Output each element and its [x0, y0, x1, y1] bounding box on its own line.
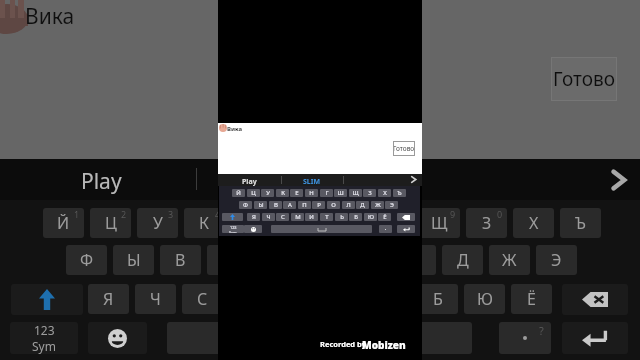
button[interactable]: В — [269, 201, 282, 209]
button[interactable]: Й — [43, 208, 84, 238]
button[interactable]: Ь — [335, 213, 348, 221]
button[interactable]: Ш — [372, 208, 413, 238]
button[interactable]: М — [291, 213, 304, 221]
button[interactable]: Ф — [239, 201, 252, 209]
button[interactable]: Ё — [511, 284, 552, 314]
button[interactable]: У — [137, 208, 178, 238]
button[interactable]: Готово — [551, 57, 617, 101]
button[interactable]: Е — [290, 189, 303, 197]
button[interactable]: Щ — [349, 189, 362, 197]
staticText: Ц — [105, 212, 117, 234]
staticText: Щ — [352, 189, 359, 197]
button[interactable]: Ч — [262, 213, 275, 221]
button[interactable]: Е — [231, 208, 272, 238]
button[interactable]: Emoji — [88, 322, 147, 354]
staticText: Sym — [32, 338, 56, 354]
button[interactable]: Space — [271, 225, 372, 233]
button[interactable]: Я — [247, 213, 260, 221]
button[interactable]: Ц — [90, 208, 131, 238]
button[interactable]: Ё — [378, 213, 391, 221]
button[interactable]: С — [182, 284, 223, 314]
staticText: Е — [247, 212, 256, 234]
button[interactable]: В — [160, 245, 201, 275]
staticText: 123 — [34, 322, 55, 338]
button[interactable]: Х — [513, 208, 554, 238]
button[interactable]: Л — [342, 201, 355, 209]
button[interactable]: Х — [378, 189, 391, 197]
button[interactable]: О — [327, 201, 340, 209]
button[interactable]: Г — [320, 189, 333, 197]
button[interactable]: Backspace — [562, 284, 628, 315]
button[interactable]: Э — [385, 201, 398, 209]
button[interactable]: Backspace — [397, 213, 415, 221]
button[interactable]: Готово — [393, 141, 415, 156]
staticText: Е — [295, 189, 299, 197]
button[interactable]: Н — [305, 189, 318, 197]
button[interactable]: Э — [536, 245, 577, 275]
button[interactable]: Д — [442, 245, 483, 275]
button[interactable]: Г — [325, 208, 366, 238]
button[interactable]: Ы — [254, 201, 267, 209]
button[interactable]: Щ — [419, 208, 460, 238]
button[interactable]: А — [207, 245, 248, 275]
button[interactable]: И — [305, 213, 318, 221]
button[interactable]: Symbols — [222, 225, 244, 233]
button[interactable]: Б — [349, 213, 362, 221]
button[interactable]: Next — [608, 169, 630, 191]
button[interactable]: Т — [320, 213, 333, 221]
button[interactable]: Enter — [397, 225, 415, 233]
button[interactable]: С — [276, 213, 289, 221]
button[interactable]: К — [276, 189, 289, 197]
button[interactable]: ? — [499, 322, 551, 354]
button[interactable]: Н — [278, 208, 319, 238]
button[interactable]: П — [298, 201, 311, 209]
button[interactable]: З — [466, 208, 507, 238]
button[interactable]: Й — [232, 189, 245, 197]
button[interactable]: Ж — [371, 201, 384, 209]
button[interactable]: Next — [409, 175, 418, 184]
staticText: Щ — [431, 212, 448, 234]
button[interactable]: Ъ — [393, 189, 406, 197]
staticText: Д — [457, 249, 469, 271]
button[interactable]: Л — [395, 245, 436, 275]
button[interactable]: Ф — [66, 245, 107, 275]
button[interactable]: У — [261, 189, 274, 197]
button[interactable]: Ы — [113, 245, 154, 275]
button[interactable]: К — [184, 208, 225, 238]
button[interactable]: Д — [356, 201, 369, 209]
button[interactable]: Shift — [11, 284, 83, 315]
button[interactable]: Ц — [247, 189, 260, 197]
button[interactable]: З — [363, 189, 376, 197]
button[interactable]: 123 — [10, 322, 78, 354]
staticText: З — [368, 189, 372, 197]
staticText: 123 — [230, 225, 237, 230]
button[interactable]: Ч — [135, 284, 176, 314]
button[interactable]: А — [283, 201, 296, 209]
button[interactable]: Emoji — [244, 225, 262, 233]
button[interactable]: Period — [379, 225, 392, 233]
staticText: Ы — [127, 249, 141, 271]
button[interactable]: Shift — [222, 213, 243, 221]
button[interactable]: Ъ — [560, 208, 601, 238]
staticText: В — [175, 249, 186, 271]
button[interactable]: Ю — [364, 213, 377, 221]
button[interactable]: Я — [88, 284, 129, 314]
staticText: 6 — [309, 208, 315, 220]
button[interactable]: Ж — [489, 245, 530, 275]
staticText: К — [281, 189, 285, 197]
button[interactable] — [167, 322, 472, 354]
button[interactable]: Р — [312, 201, 325, 209]
button[interactable]: Enter — [562, 322, 628, 354]
button[interactable]: Ш — [334, 189, 347, 197]
button[interactable]: Ю — [464, 284, 505, 314]
button[interactable]: Б — [417, 284, 458, 314]
